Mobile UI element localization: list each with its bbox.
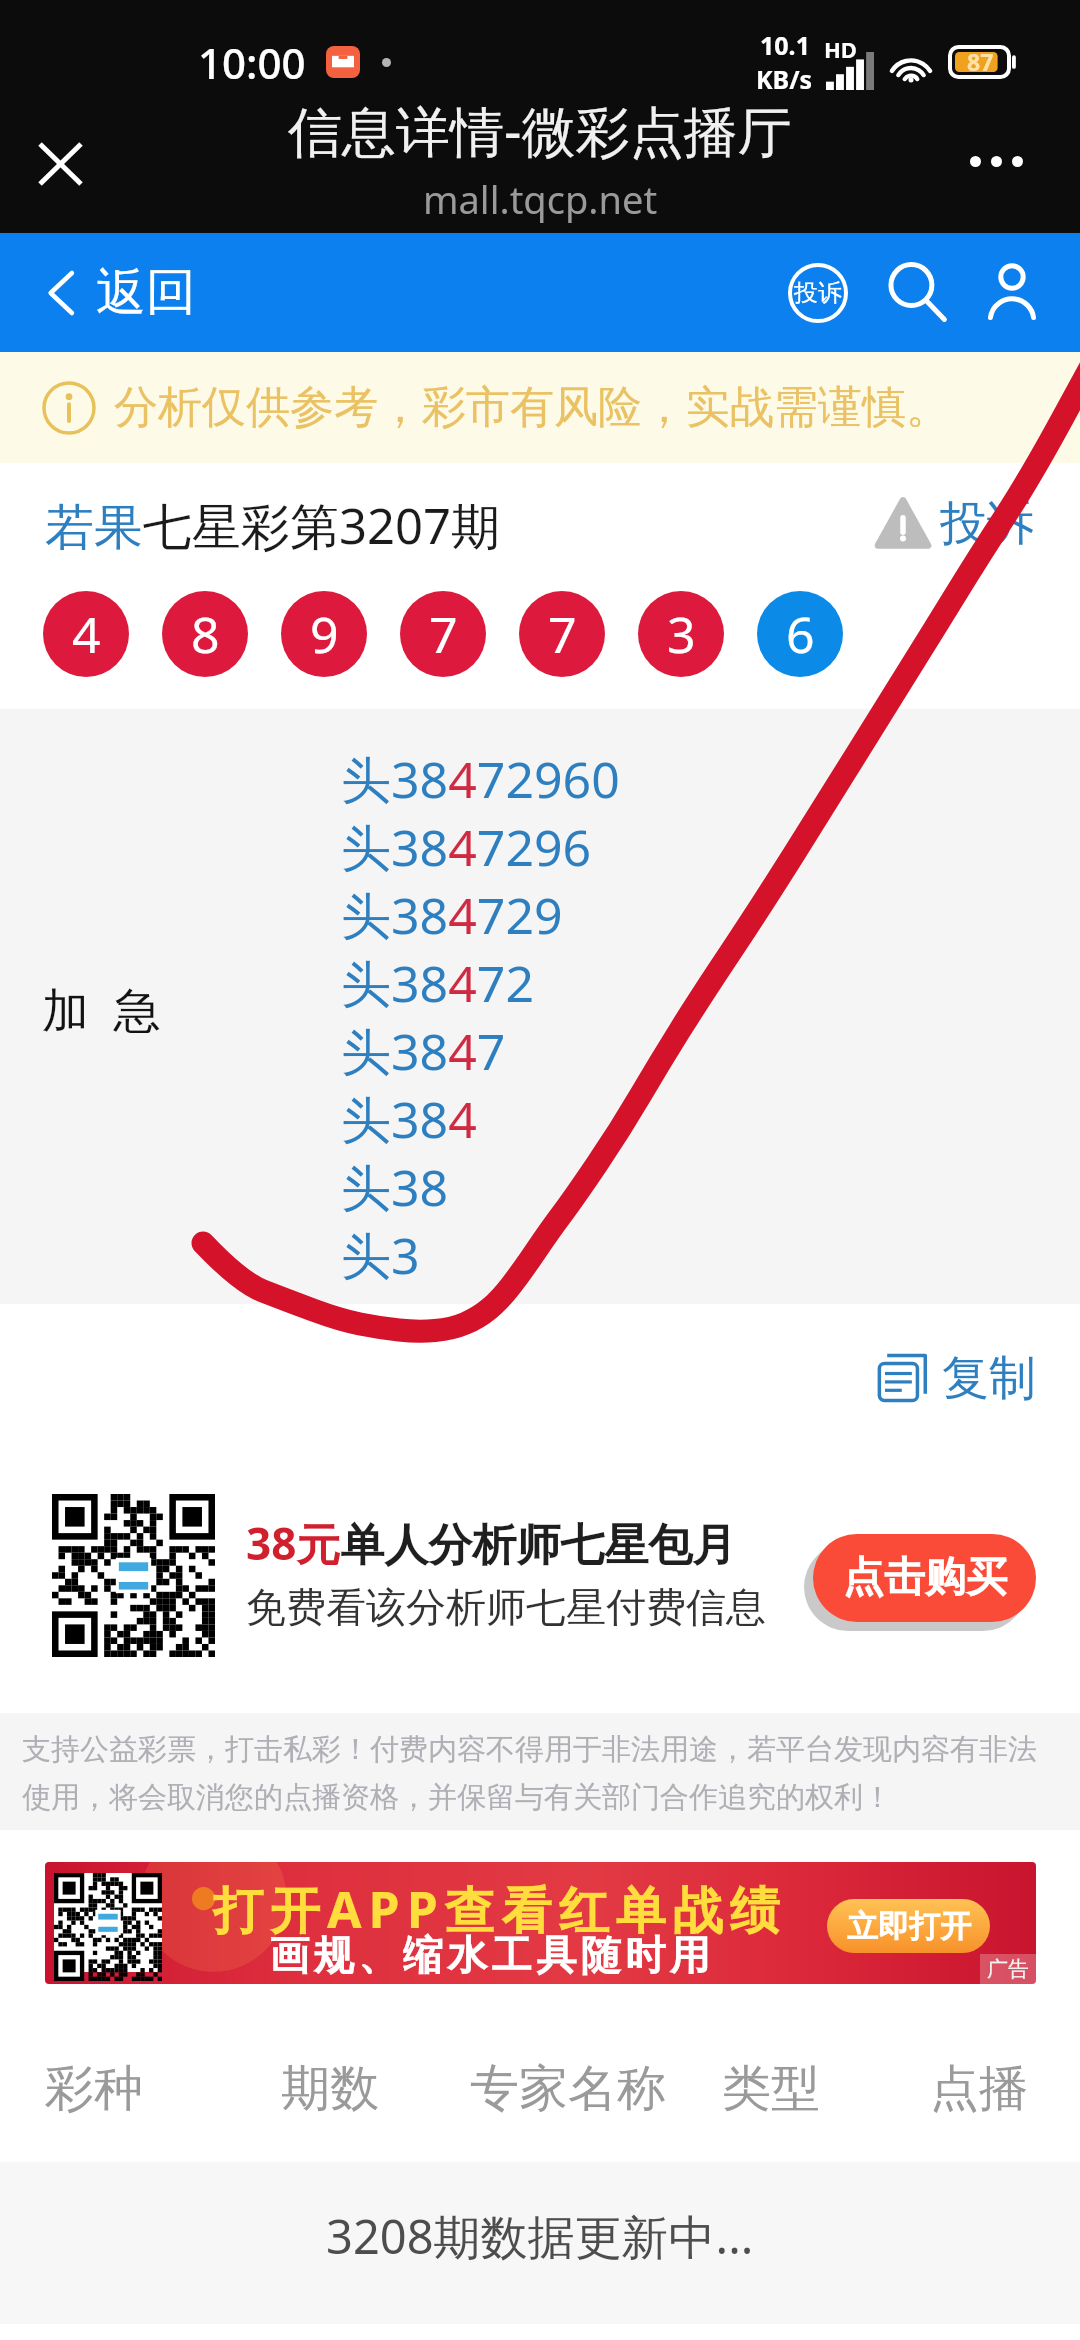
button[interactable]: 立即打开: [827, 1899, 990, 1953]
staticText: 头38: [341, 1153, 449, 1221]
staticText: 复制: [942, 1349, 1036, 1408]
staticText: 信息详情-微彩点播厅: [288, 93, 792, 167]
staticText: 期数: [281, 2058, 379, 2120]
staticText: HD: [824, 34, 857, 64]
staticText: 免费看该分析师七星付费信息: [246, 1582, 766, 1632]
staticText: 10.1: [760, 28, 810, 62]
staticText: 87: [967, 46, 994, 77]
button[interactable]: 专家名称: [470, 2044, 666, 2134]
staticText: 4: [72, 600, 101, 668]
staticText: 立即打开: [847, 1907, 971, 1946]
button[interactable]: 期数: [281, 2044, 379, 2134]
staticText: 投诉: [794, 278, 842, 308]
button[interactable]: 投诉: [876, 490, 1034, 556]
staticText: 7: [429, 600, 458, 668]
staticText: 8: [191, 600, 220, 668]
staticText: 画规、缩水工具随时用: [267, 1930, 712, 1980]
button[interactable]: 打开APP查看红单战绩: [45, 1862, 1036, 1984]
staticText: 9: [310, 600, 339, 668]
staticText: 6: [786, 600, 815, 668]
staticText: 返回: [96, 261, 196, 324]
staticText: 头384: [341, 1085, 477, 1153]
staticText: 3208期数据更新中...: [326, 2204, 754, 2268]
button[interactable]: 点击购买: [813, 1534, 1036, 1622]
button[interactable]: 彩种: [45, 2044, 143, 2134]
button[interactable]: 复制: [876, 1340, 1036, 1416]
button[interactable]: Close: [18, 122, 102, 206]
staticText: 加 急: [42, 977, 161, 1041]
staticText: 支持公益彩票，打击私彩！付费内容不得用于非法用途，若平台发现内容有非法使用，将会…: [22, 1731, 1062, 1815]
staticText: KB/s: [756, 62, 813, 96]
button[interactable]: 38元单人分析师七星包月: [246, 1513, 791, 1632]
staticText: 头384729: [341, 881, 563, 949]
staticText: 头38472: [341, 949, 534, 1017]
staticText: 若果七星彩第3207期: [45, 492, 501, 559]
button[interactable]: 点播: [930, 2044, 1028, 2134]
staticText: 投诉: [940, 494, 1034, 553]
button[interactable]: 类型: [722, 2044, 820, 2134]
button[interactable]: More options: [946, 111, 1046, 211]
staticText: 彩种: [45, 2058, 143, 2120]
staticText: 头3: [341, 1221, 420, 1289]
staticText: 类型: [722, 2058, 820, 2120]
staticText: 7: [548, 600, 577, 668]
staticText: 分析仅供参考，彩市有风险，实战需谨慎。: [114, 380, 950, 435]
staticText: 头3847296: [341, 813, 592, 881]
staticText: 38元单人分析师七星包月: [246, 1513, 737, 1573]
staticText: mall.tqcp.net: [423, 173, 658, 225]
staticText: 广告: [987, 1956, 1029, 1982]
button[interactable]: Account: [970, 251, 1054, 335]
button[interactable]: Search: [876, 251, 960, 335]
staticText: 专家名称: [470, 2058, 666, 2120]
staticText: 3: [667, 600, 696, 668]
button[interactable]: 投诉: [776, 251, 860, 335]
staticText: 10:00: [198, 34, 306, 91]
staticText: 点播: [930, 2058, 1028, 2120]
staticText: 打开APP查看红单战绩: [213, 1875, 787, 1943]
button[interactable]: 返回: [48, 233, 196, 352]
staticText: 头38472960: [341, 745, 620, 813]
button[interactable]: 二维码: [52, 1494, 215, 1657]
staticText: 点击购买: [843, 1552, 1007, 1604]
staticText: 头3847: [341, 1017, 506, 1085]
